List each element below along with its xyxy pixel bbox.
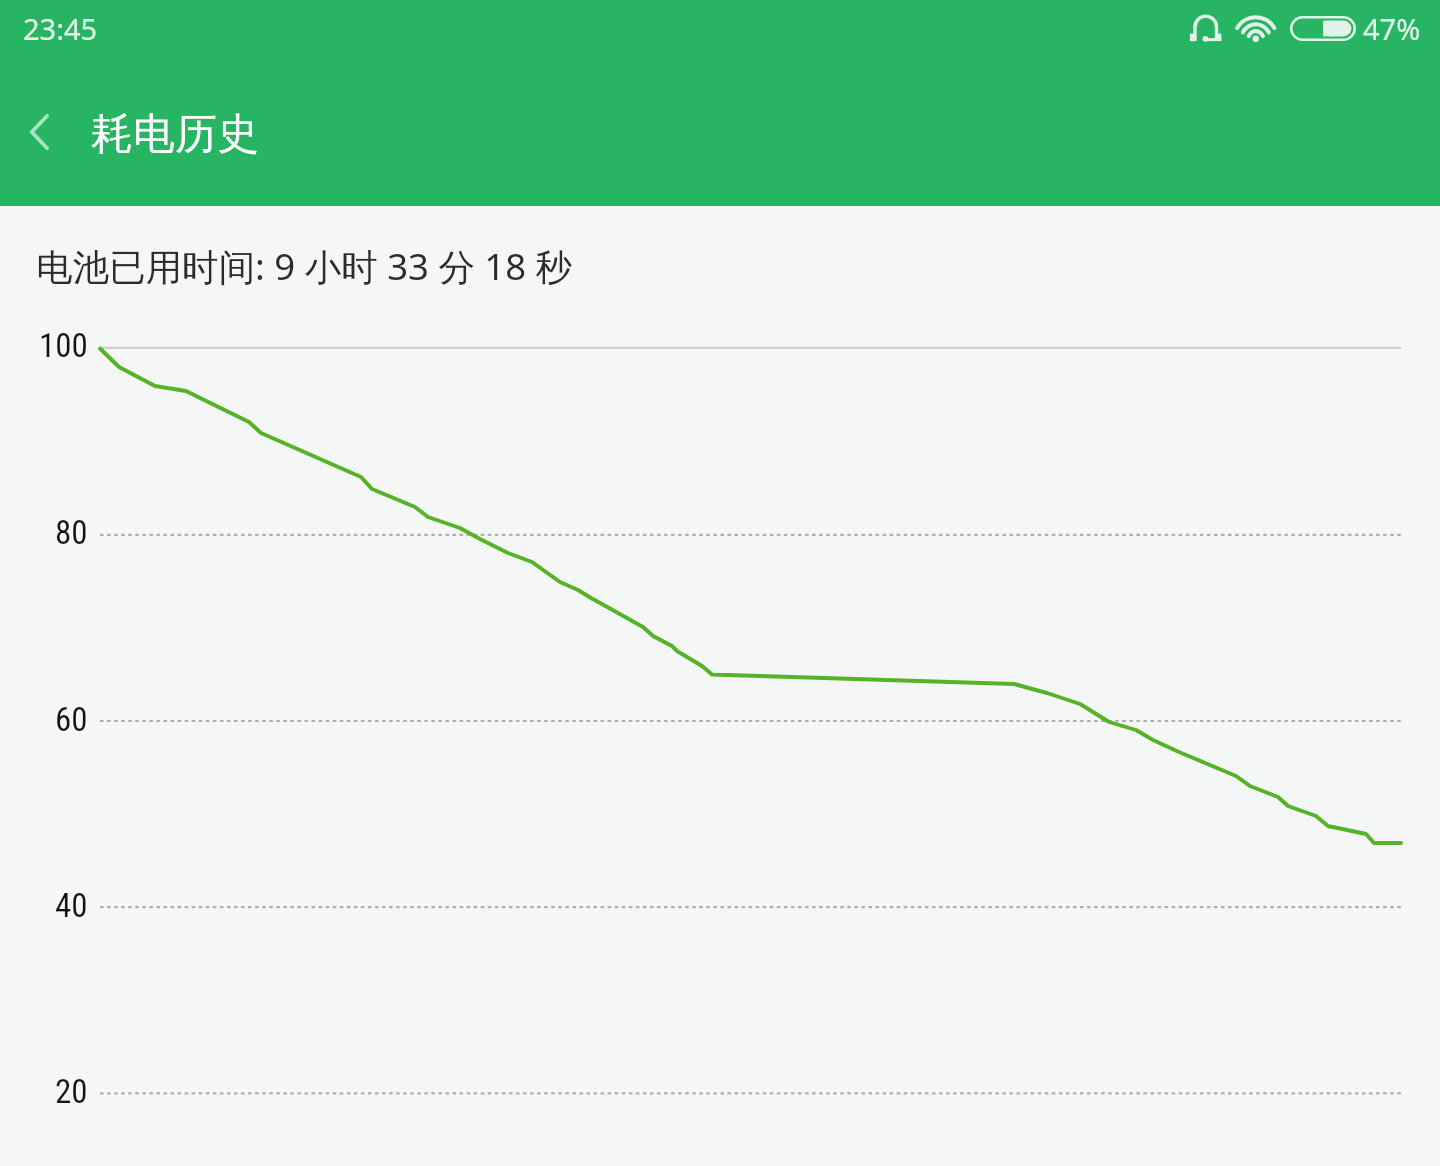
staticText: 80	[55, 513, 88, 552]
staticText: 47%	[1363, 9, 1421, 48]
button[interactable]: Back	[0, 89, 78, 175]
staticText: 电池已用时间: 9 小时 33 分 18 秒	[36, 241, 573, 291]
staticText: 100	[39, 326, 88, 365]
staticText: 40	[55, 886, 88, 925]
other: Battery 47 percent	[1290, 16, 1356, 41]
staticText: 23:45	[23, 9, 98, 48]
staticText: 60	[55, 700, 88, 739]
staticText: 耗电历史	[91, 108, 259, 161]
staticText: 20	[55, 1072, 88, 1111]
other: Wi-Fi signal	[1232, 6, 1280, 50]
other: Headset connected	[1184, 6, 1228, 50]
